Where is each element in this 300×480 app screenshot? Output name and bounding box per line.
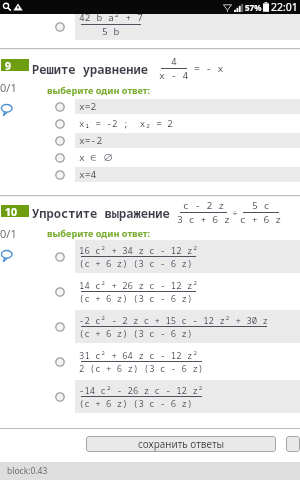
staticText: x₁ = -2 ; x₂ = 2 xyxy=(79,117,173,130)
staticText: block:0.43 xyxy=(7,465,48,477)
staticText: 0/1 xyxy=(0,226,17,241)
staticText: x - 4 xyxy=(159,69,189,82)
staticText: x=-2 xyxy=(79,134,103,147)
staticText: 2 (c + 6 z) (3 c - 6 z) xyxy=(79,362,204,374)
staticText: Упростите выражение xyxy=(32,205,170,221)
staticText: (c + 6 z) (3 c - 6 z) xyxy=(79,397,193,409)
button[interactable]: x₁ = -2 ; x₂ = 2 xyxy=(0,116,300,131)
staticText: 14 c² + 26 z c - 12 z² xyxy=(79,279,198,291)
staticText: x ∈ ∅ xyxy=(79,151,114,164)
staticText: -14 c² - 26 z c - 12 z² xyxy=(79,384,204,396)
button[interactable]: 42 b a² + 7 xyxy=(0,14,300,40)
staticText: x=2 xyxy=(79,100,97,113)
button[interactable]: сохранить ответы xyxy=(86,436,276,452)
staticText: 0/1 xyxy=(0,80,17,95)
staticText: (c + 6 z) (3 c - 6 z) xyxy=(79,327,193,339)
button[interactable]: 16 c² + 34 z c - 12 z² xyxy=(0,240,300,273)
staticText: 3 c + 6 z xyxy=(177,213,230,226)
staticText: сохранить ответы xyxy=(138,437,225,451)
button[interactable]: -2 c² - 2 z c + 15 c - 12 z² + 30 z xyxy=(0,310,300,343)
staticText: 10 xyxy=(5,205,18,217)
button[interactable]: x=-2 xyxy=(0,133,300,148)
staticText: 31 c² + 64 z c - 12 z² xyxy=(79,349,198,361)
staticText: c - 2 z xyxy=(183,199,225,212)
other: Search xyxy=(2,2,12,12)
staticText: c + 6 z xyxy=(240,213,282,226)
staticText: = - x xyxy=(194,62,224,75)
staticText: (c + 6 z) (3 c - 6 z) xyxy=(79,292,193,304)
button[interactable]: x ∈ ∅ xyxy=(0,150,300,165)
staticText: 42 b a² + 7 xyxy=(79,11,143,24)
staticText: -2 c² - 2 z c + 15 c - 12 z² + 30 z xyxy=(79,314,269,326)
other: Comment xyxy=(1,250,13,262)
button[interactable] xyxy=(286,436,300,452)
staticText: (c + 6 z) (3 c - 6 z) xyxy=(79,257,193,269)
staticText: 16 c² + 34 z c - 12 z² xyxy=(79,244,198,256)
button[interactable]: -14 c² - 26 z c - 12 z² xyxy=(0,380,300,413)
button[interactable]: x=4 xyxy=(0,167,300,182)
staticText: выберите один ответ: xyxy=(47,227,151,240)
staticText: ÷ xyxy=(232,206,238,219)
staticText: 9 xyxy=(5,59,12,71)
staticText: 5 b xyxy=(102,25,120,37)
staticText: x=4 xyxy=(79,168,97,181)
staticText: 5 c xyxy=(252,199,270,212)
staticText: выберите один ответ: xyxy=(47,84,151,97)
staticText: 22:01 xyxy=(271,0,298,14)
staticText: 57% xyxy=(245,2,262,13)
button[interactable]: 31 c² + 64 z c - 12 z² xyxy=(0,345,300,378)
other: Warning xyxy=(13,2,23,12)
staticText: 4 xyxy=(171,55,177,68)
other: Comment xyxy=(1,104,13,116)
button[interactable]: x=2 xyxy=(0,99,300,114)
staticText: Решите уравнение xyxy=(32,61,149,77)
button[interactable]: 14 c² + 26 z c - 12 z² xyxy=(0,275,300,308)
